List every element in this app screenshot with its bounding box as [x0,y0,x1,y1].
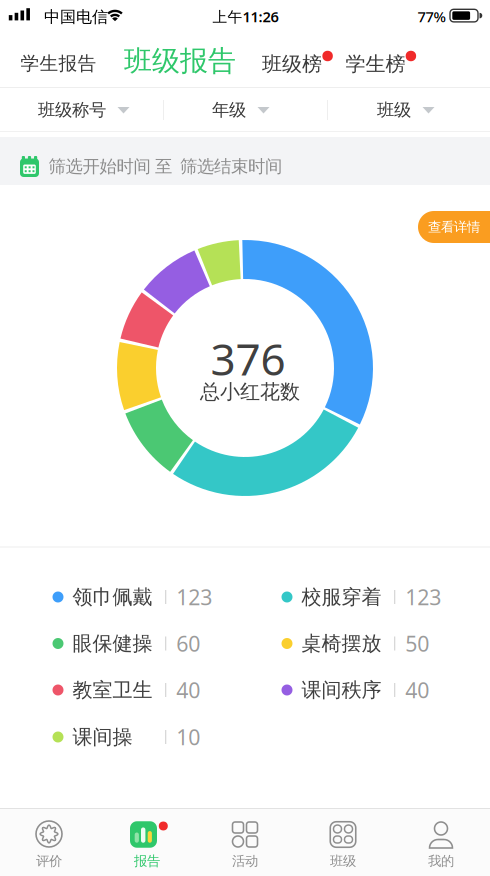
button[interactable]: 班级报告 [117,40,242,82]
staticText: 总小红花数 [200,379,300,404]
staticText: 班级 [377,99,411,121]
staticText: 校服穿着 [301,585,381,609]
button[interactable]: 学生榜 [337,43,413,85]
button[interactable]: 学生报告 [8,42,108,84]
staticText: 至 [155,156,172,177]
staticText: 123 [176,583,212,611]
button[interactable]: 班级 [346,88,466,132]
staticText: 123 [405,583,441,611]
button[interactable]: 活动 [196,809,294,875]
staticText: 376 [210,329,285,388]
staticText: 查看详情 [428,219,480,235]
staticText: 教室卫生 [72,678,152,702]
staticText: 77% [417,7,445,26]
button[interactable]: 班级 [294,809,392,875]
staticText: 领巾佩戴 [72,585,152,609]
staticText: 中国电信 [44,7,108,27]
staticText: 学生榜 [345,52,405,76]
staticText: 班级 [330,853,356,869]
staticText: 50 [405,629,429,658]
staticText: 课间操 [72,725,132,749]
staticText: 报告 [134,853,160,869]
staticText: 60 [176,629,200,658]
button[interactable]: 我的 [392,809,490,875]
staticText: 40 [405,676,429,704]
staticText: 桌椅摆放 [301,631,381,656]
staticText: 班级榜 [262,52,322,76]
staticText: 我的 [428,853,454,869]
staticText: 眼保健操 [72,631,152,656]
staticText: 活动 [232,853,258,869]
staticText: 班级报告 [124,44,236,78]
staticText: 课间秩序 [301,678,381,702]
button[interactable]: 筛选开始时间 [48,156,150,177]
button[interactable]: 评价 [0,809,98,875]
staticText: 筛选开始时间 [48,156,150,177]
staticText: 上午11:26 [212,7,278,26]
button[interactable]: 报告 [98,809,196,875]
button[interactable]: 筛选结束时间 [180,156,282,177]
button[interactable]: 查看详情 [418,211,490,243]
button[interactable]: 班级榜 [254,43,330,85]
button[interactable]: 年级 [181,88,301,132]
staticText: 筛选结束时间 [180,156,282,177]
button[interactable]: 班级称号 [9,88,159,132]
staticText: 评价 [36,853,62,869]
staticText: 班级称号 [38,99,106,121]
staticText: 10 [176,723,200,751]
staticText: 年级 [212,99,246,121]
staticText: 学生报告 [20,52,96,75]
staticText: 40 [176,676,200,704]
